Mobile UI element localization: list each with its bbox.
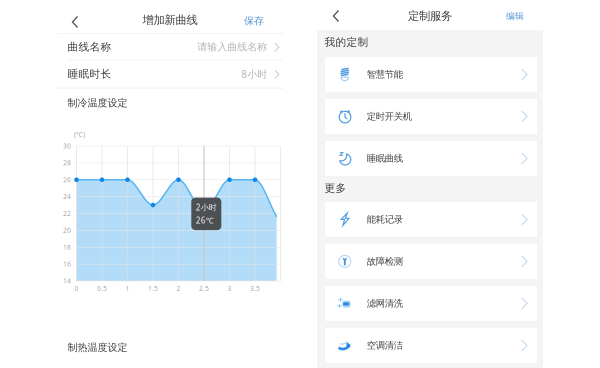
staticText: 睡眠曲线 [367,152,403,164]
staticText: 3.5 [250,284,260,293]
staticText: 滤网清洗 [367,297,403,309]
button[interactable]: Back [328,8,343,23]
staticText: 定制服务 [408,9,452,23]
staticText: 2 [176,284,180,293]
staticText: 智慧节能 [367,68,403,80]
staticText: 16 [63,259,71,268]
staticText: 14 [63,276,71,285]
staticText: 定时开关机 [367,110,412,122]
staticText: 8小时 [241,67,267,81]
button[interactable]: 睡眠曲线 [325,141,537,176]
staticText: 能耗记录 [367,213,403,225]
staticText: 30 [63,141,71,150]
button[interactable]: 滤网清洗 [325,286,537,321]
button[interactable]: 智慧节能 [325,57,537,92]
staticText: 3 [227,284,231,293]
staticText: 睡眠时长 [67,67,111,81]
staticText: 曲线名称 [67,40,111,54]
staticText: 0.5 [97,284,107,293]
staticText: 22 [63,209,71,218]
staticText: 请输入曲线名称 [197,41,267,53]
button[interactable]: 曲线名称 [57,34,283,60]
staticText: 20 [63,226,71,235]
staticText: 2.5 [199,284,209,293]
staticText: 24 [63,192,71,201]
staticText: 1 [125,284,129,293]
staticText: 编辑 [506,10,524,22]
staticText: 增加新曲线 [142,13,197,27]
button[interactable]: 空调清洁 [325,328,537,363]
staticText: 保存 [244,15,264,27]
button[interactable]: 能耗记录 [325,202,537,237]
staticText: 制热温度设定 [67,341,127,354]
staticText: 1.5 [148,284,158,293]
staticText: 2小时 [196,202,217,213]
staticText: 故障检测 [367,255,403,267]
button[interactable]: 保存 [235,8,273,34]
staticText: 18 [63,243,71,251]
button[interactable]: 定时开关机 [325,99,537,134]
button[interactable]: 故障检测 [325,244,537,279]
button[interactable]: 睡眠时长 [57,60,283,88]
button[interactable]: 编辑 [497,3,533,29]
staticText: 空调清洁 [367,339,403,351]
staticText: 制冷温度设定 [67,96,127,109]
staticText: 28 [63,158,71,167]
staticText: 26℃ [196,215,214,226]
staticText: 0 [74,284,78,293]
staticText: 更多 [324,181,346,195]
staticText: (℃) [74,130,85,139]
staticText: 我的定制 [324,35,368,49]
button[interactable]: Back [67,14,82,29]
staticText: 26 [63,175,71,184]
